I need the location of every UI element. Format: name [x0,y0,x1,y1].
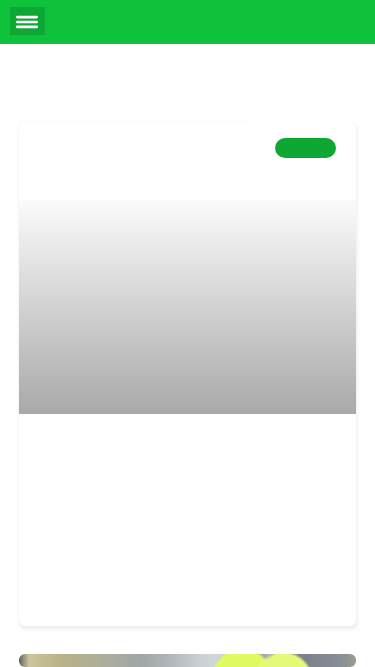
button[interactable]: Action [275,138,336,158]
button[interactable] [19,654,356,667]
button[interactable]: Action [19,122,356,626]
button[interactable]: Menu [10,7,45,35]
